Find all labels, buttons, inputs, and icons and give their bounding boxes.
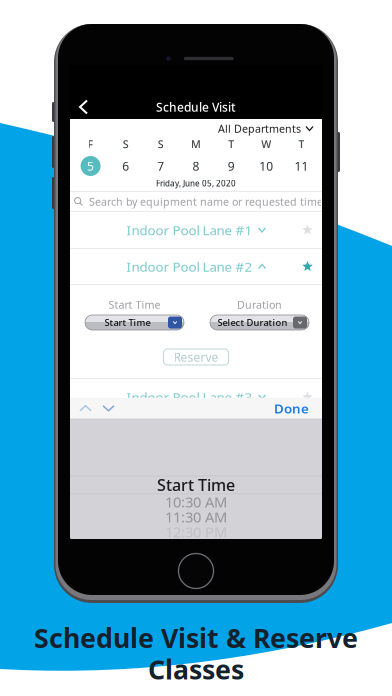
staticText: W	[261, 137, 271, 151]
staticText: Start Time	[104, 316, 150, 329]
button[interactable]: S	[143, 138, 178, 176]
button[interactable]: M	[178, 138, 213, 176]
button[interactable]: Indoor Pool Lane #3	[70, 379, 322, 415]
staticText: Done	[274, 399, 309, 417]
staticText: Reserve	[173, 349, 218, 365]
button[interactable]: Next field	[97, 399, 120, 418]
staticText: M	[191, 137, 201, 151]
button[interactable]: Select Duration	[210, 315, 309, 330]
staticText: 5	[87, 158, 94, 174]
staticText: Start Time	[108, 297, 160, 312]
staticText: Schedule Visit	[156, 99, 236, 115]
staticText: 11	[294, 158, 308, 174]
button[interactable]: S	[108, 138, 143, 176]
button[interactable]: Indoor Pool Lane #2	[70, 249, 322, 284]
button[interactable]: F	[73, 138, 108, 176]
button[interactable]: Start Time	[85, 315, 184, 330]
staticText: Classes	[148, 651, 244, 687]
staticText: Indoor Pool Lane #1	[126, 221, 252, 239]
staticText: 6	[122, 158, 129, 174]
button[interactable]: Previous field	[74, 399, 97, 418]
staticText: T	[298, 137, 304, 151]
staticText: 10:30 AM	[165, 492, 227, 511]
staticText: 10	[259, 158, 273, 174]
button[interactable]: T	[284, 138, 319, 176]
button[interactable]: W	[249, 138, 284, 176]
button[interactable]: All Departments	[218, 118, 322, 139]
staticText: Friday, June 05, 2020	[156, 178, 236, 189]
staticText: 8	[192, 158, 199, 174]
staticText: Schedule Visit & Reserve	[34, 620, 358, 655]
staticText: F	[88, 137, 94, 151]
staticText: 7	[157, 158, 164, 174]
staticText: T	[228, 137, 234, 151]
button[interactable]: Reserve	[163, 349, 228, 365]
staticText: S	[123, 137, 129, 151]
staticText: Indoor Pool Lane #2	[126, 258, 252, 275]
staticText: Duration	[237, 297, 282, 312]
button[interactable]: Indoor Pool Lane #1	[70, 212, 322, 248]
staticText: 11:30 AM	[165, 507, 227, 526]
staticText: Start Time	[157, 474, 235, 495]
staticText: Select Duration	[217, 316, 287, 329]
staticText: 9	[228, 158, 235, 174]
button[interactable]: Done	[265, 394, 318, 422]
staticText: All Departments	[218, 121, 301, 136]
staticText: S	[158, 137, 164, 151]
staticText: 12:30 PM	[165, 522, 227, 541]
button[interactable]: Back	[70, 92, 97, 121]
staticText: Indoor Pool Lane #3	[126, 388, 252, 406]
staticText: Search by equipment name or requested ti…	[89, 194, 323, 209]
button[interactable]: T	[214, 138, 249, 176]
